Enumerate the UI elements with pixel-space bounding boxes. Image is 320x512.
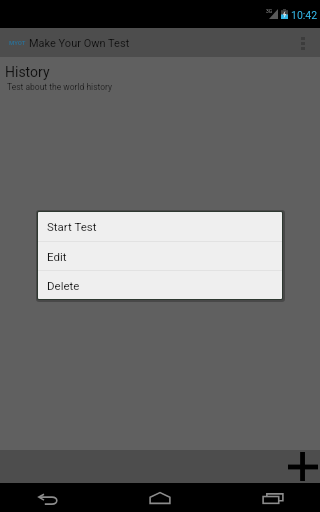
staticText: Start Test [47,220,97,233]
staticText: 3G [266,8,273,14]
button[interactable]: Start Test [38,212,282,241]
staticText: Test about the world history [7,82,113,92]
button[interactable]: Add test [286,450,319,483]
staticText: MYOT [9,39,26,46]
staticText: Make Your Own Test [29,37,130,50]
button[interactable]: Edit [38,242,282,270]
staticText: 10:42 [291,9,318,21]
staticText: Edit [47,250,67,263]
button[interactable]: Back [24,485,72,512]
button[interactable]: More options [291,29,315,58]
button[interactable]: Home [136,483,184,512]
button[interactable]: Delete [38,271,282,299]
staticText: Delete [47,279,80,292]
button[interactable]: Recent apps [249,484,297,512]
staticText: History [5,64,50,80]
